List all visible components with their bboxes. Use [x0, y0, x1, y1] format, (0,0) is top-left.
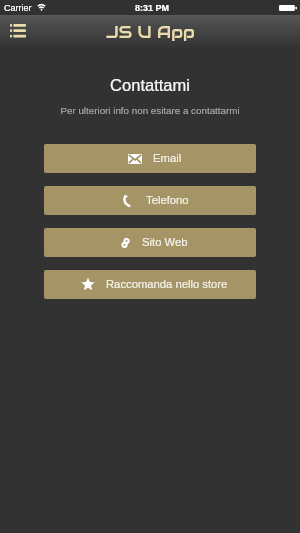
button[interactable]: Menu [0, 15, 35, 48]
button[interactable]: Sito Web [44, 228, 256, 257]
staticText: Carrier [4, 3, 32, 13]
staticText: JS U App [106, 21, 195, 43]
staticText: Raccomanda nello store [106, 278, 228, 291]
staticText: Email [153, 152, 182, 165]
staticText: Contattami [0, 76, 300, 94]
button[interactable]: Email [44, 144, 256, 173]
staticText: 8:31 PM [135, 3, 170, 13]
staticText: Per ulteriori info non esitare a contatt… [0, 105, 300, 116]
button[interactable]: Raccomanda nello store [44, 270, 256, 299]
button[interactable]: Telefono [44, 186, 256, 215]
staticText: Telefono [146, 194, 189, 207]
staticText: Sito Web [142, 236, 188, 249]
